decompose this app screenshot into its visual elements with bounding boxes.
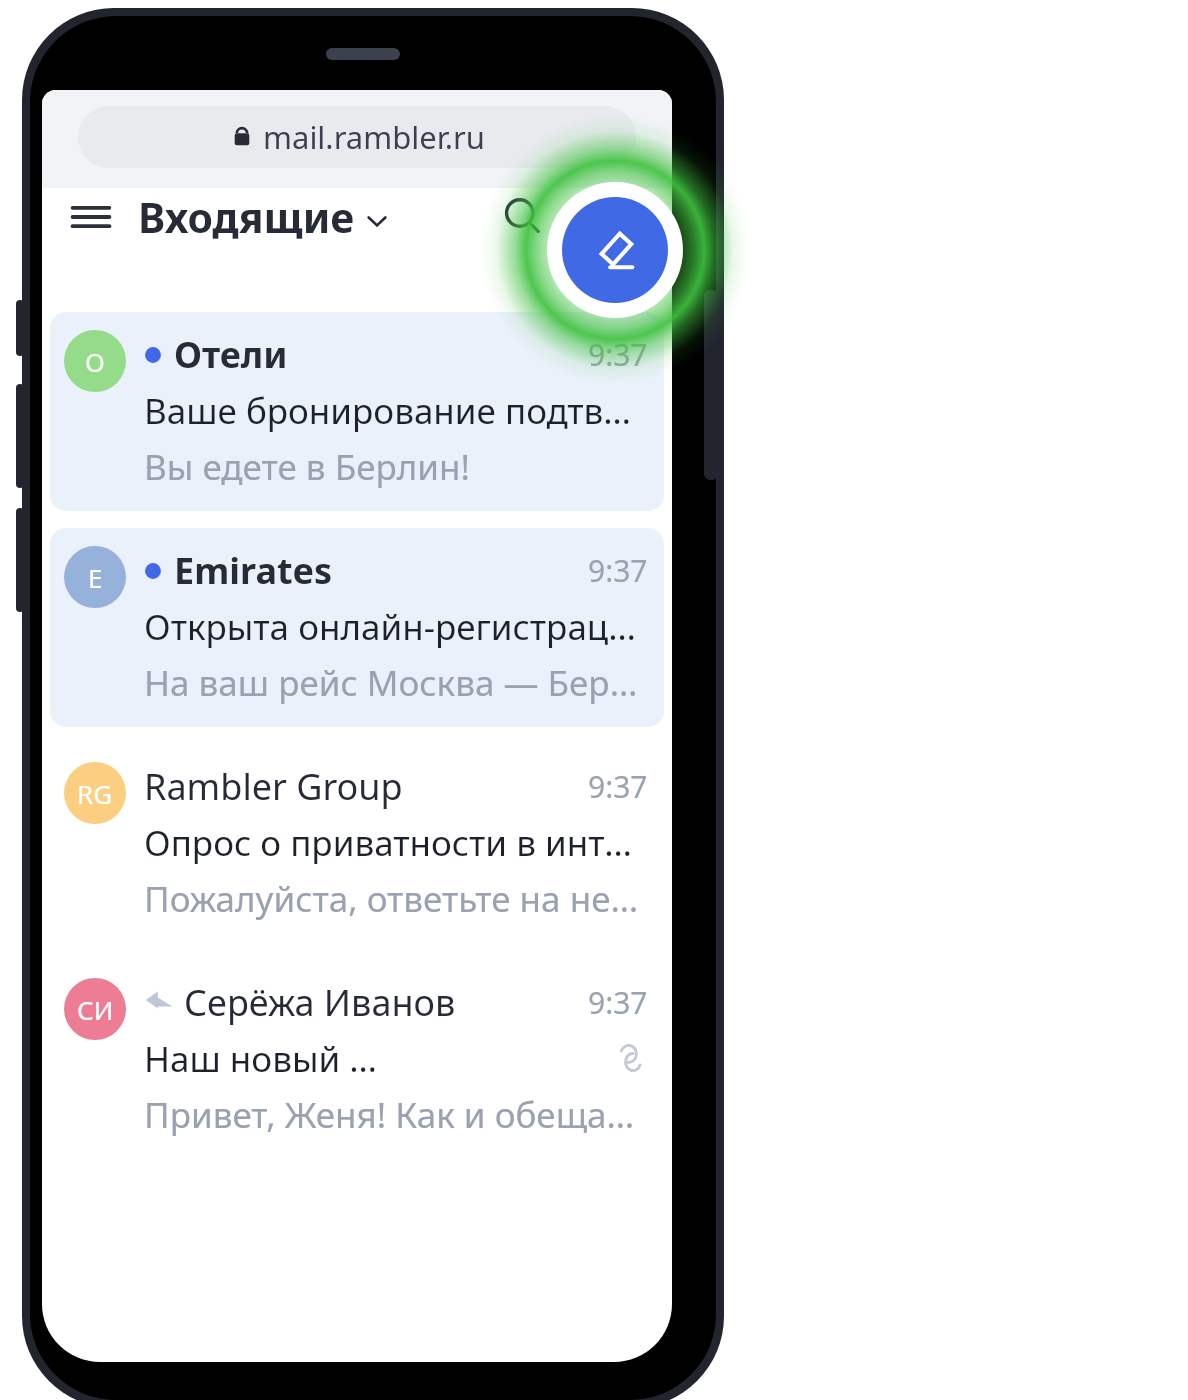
staticText: О xyxy=(85,344,105,379)
button[interactable]: Написать письмо xyxy=(562,197,668,303)
button[interactable]: Меню xyxy=(62,188,120,246)
staticText: E xyxy=(88,560,103,595)
staticText: Emirates xyxy=(174,546,333,595)
staticText: Пожалуйста, ответьте на несколь... xyxy=(144,875,648,923)
button[interactable]: Входящие xyxy=(138,189,388,245)
staticText: Привет, Женя! Как и обещал, в... xyxy=(144,1091,648,1139)
staticText: Опрос о приватности в интернете xyxy=(144,819,648,867)
staticText: Вы едете в Берлин! xyxy=(144,443,470,491)
button[interactable]: RG xyxy=(50,744,664,943)
staticText: Наш новый офис :-) xyxy=(144,1035,379,1083)
staticText: Входящие xyxy=(138,189,355,245)
staticText: Rambler Group xyxy=(144,762,403,811)
staticText: 9:37 xyxy=(588,334,648,375)
staticText: Серёжа Иванов xyxy=(184,978,456,1027)
staticText: mail.rambler.ru xyxy=(263,116,485,158)
staticText: 9:37 xyxy=(588,766,648,807)
button[interactable]: mail.rambler.ru xyxy=(78,106,636,168)
staticText: СИ xyxy=(77,992,114,1027)
staticText: Открыта онлайн-регистрация на ... xyxy=(144,603,648,651)
staticText: На ваш рейс Москва — Берлин, в... xyxy=(144,659,648,707)
button[interactable]: О xyxy=(50,312,664,511)
staticText: 9:37 xyxy=(588,982,648,1023)
button[interactable]: E xyxy=(50,528,664,727)
staticText: Ваше бронирование подтверждено xyxy=(144,387,648,435)
staticText: Отели xyxy=(174,330,288,379)
staticText: RG xyxy=(77,776,113,811)
button[interactable]: СИ xyxy=(50,960,664,1159)
button[interactable]: Поиск xyxy=(494,188,552,246)
staticText: 9:37 xyxy=(588,550,648,591)
